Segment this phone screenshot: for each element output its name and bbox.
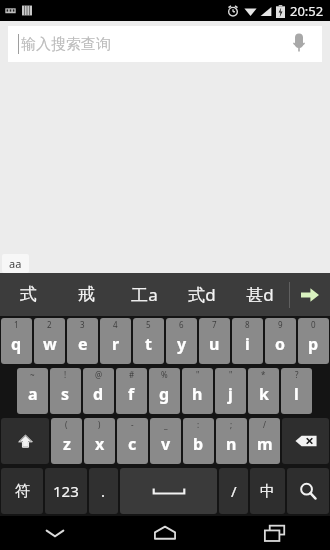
staticText: % bbox=[161, 369, 168, 380]
staticText: 戒 bbox=[78, 284, 95, 305]
button[interactable]: 8 bbox=[232, 318, 263, 364]
button[interactable]: " bbox=[182, 368, 213, 414]
button[interactable]: _ bbox=[150, 418, 181, 464]
staticText: @ bbox=[95, 369, 103, 380]
staticText: n bbox=[226, 433, 237, 455]
button[interactable]: Backspace bbox=[282, 418, 329, 464]
button[interactable]: 式 bbox=[0, 273, 57, 316]
staticText: w bbox=[43, 333, 57, 355]
button[interactable]: ( bbox=[51, 418, 82, 464]
staticText: 7 bbox=[212, 319, 217, 330]
button[interactable]: 4 bbox=[100, 318, 131, 364]
staticText: z bbox=[63, 433, 71, 455]
button[interactable]: - bbox=[117, 418, 148, 464]
button[interactable]: . bbox=[89, 468, 118, 514]
staticText: / bbox=[231, 481, 237, 501]
staticText: " bbox=[196, 369, 200, 380]
staticText: aa bbox=[9, 256, 22, 271]
staticText: / bbox=[263, 419, 266, 430]
button[interactable]: " bbox=[215, 368, 246, 414]
button[interactable]: 5 bbox=[133, 318, 164, 364]
staticText: * bbox=[261, 369, 266, 380]
button[interactable]: * bbox=[248, 368, 279, 414]
button[interactable]: / bbox=[249, 418, 280, 464]
staticText: x bbox=[95, 433, 105, 455]
button[interactable]: ~ bbox=[17, 368, 48, 414]
button[interactable]: Hide keyboard bbox=[0, 516, 110, 550]
button[interactable]: % bbox=[149, 368, 180, 414]
staticText: 9 bbox=[278, 319, 283, 330]
button[interactable]: 甚d bbox=[231, 273, 289, 316]
button[interactable]: 2 bbox=[34, 318, 65, 364]
staticText: h bbox=[192, 383, 203, 405]
staticText: f bbox=[128, 383, 135, 405]
button[interactable]: Voice search bbox=[286, 31, 312, 57]
staticText: k bbox=[259, 383, 269, 405]
button[interactable]: 中 bbox=[250, 468, 285, 514]
button[interactable]: 1 bbox=[1, 318, 32, 364]
staticText: g bbox=[159, 383, 170, 405]
button[interactable]: 符 bbox=[1, 468, 43, 514]
staticText: ~ bbox=[30, 369, 35, 380]
staticText: . bbox=[101, 481, 106, 501]
staticText: 工a bbox=[131, 283, 158, 306]
staticText: o bbox=[275, 333, 286, 355]
staticText: d bbox=[93, 383, 104, 405]
button[interactable]: 戒 bbox=[57, 273, 115, 316]
staticText: ) bbox=[98, 419, 101, 430]
button[interactable]: ! bbox=[50, 368, 81, 414]
staticText: ; bbox=[230, 419, 233, 430]
staticText: ? bbox=[295, 369, 299, 380]
button[interactable]: 3 bbox=[67, 318, 98, 364]
staticText: c bbox=[128, 433, 137, 455]
staticText: s bbox=[61, 383, 70, 405]
button[interactable]: 7 bbox=[199, 318, 230, 364]
button[interactable]: Recent apps bbox=[220, 516, 330, 550]
button[interactable]: 123 bbox=[45, 468, 87, 514]
button[interactable]: # bbox=[116, 368, 147, 414]
staticText: 6 bbox=[179, 319, 184, 330]
button[interactable]: : bbox=[183, 418, 214, 464]
button[interactable]: 工a bbox=[115, 273, 173, 316]
staticText: ! bbox=[64, 369, 67, 380]
staticText: t bbox=[145, 333, 152, 355]
button[interactable]: 0 bbox=[298, 318, 329, 364]
staticText: 123 bbox=[53, 481, 79, 501]
staticText: : bbox=[197, 419, 200, 430]
button[interactable]: More candidates bbox=[290, 273, 330, 316]
button[interactable]: ; bbox=[216, 418, 247, 464]
staticText: 5 bbox=[146, 319, 151, 330]
staticText: ( bbox=[65, 419, 68, 430]
button[interactable]: Home bbox=[110, 516, 220, 550]
staticText: m bbox=[257, 433, 273, 455]
button[interactable]: 6 bbox=[166, 318, 197, 364]
staticText: 中 bbox=[260, 482, 275, 501]
staticText: u bbox=[209, 333, 220, 355]
staticText: 式d bbox=[188, 283, 216, 306]
staticText: 式 bbox=[20, 284, 37, 305]
staticText: i bbox=[245, 333, 250, 355]
button[interactable]: @ bbox=[83, 368, 114, 414]
staticText: v bbox=[161, 433, 171, 455]
staticText: 0 bbox=[311, 319, 316, 330]
staticText: - bbox=[131, 419, 134, 430]
staticText: " bbox=[229, 369, 233, 380]
button[interactable]: ) bbox=[84, 418, 115, 464]
button[interactable]: 式d bbox=[173, 273, 231, 316]
staticText: 20:52 bbox=[290, 2, 324, 20]
button[interactable]: Search bbox=[287, 468, 329, 514]
button[interactable]: / bbox=[219, 468, 248, 514]
button[interactable]: ? bbox=[281, 368, 312, 414]
staticText: 3 bbox=[80, 319, 85, 330]
staticText: 1 bbox=[14, 319, 19, 330]
staticText: 符 bbox=[15, 482, 30, 501]
staticText: l bbox=[294, 383, 299, 405]
button[interactable]: 9 bbox=[265, 318, 296, 364]
staticText: 2 bbox=[47, 319, 52, 330]
staticText: a bbox=[28, 383, 38, 405]
button[interactable]: Shift bbox=[1, 418, 49, 464]
button[interactable]: 输入搜索查询 bbox=[8, 26, 322, 62]
staticText: p bbox=[308, 333, 319, 355]
staticText: y bbox=[177, 333, 187, 355]
button[interactable]: Space bbox=[120, 468, 217, 514]
